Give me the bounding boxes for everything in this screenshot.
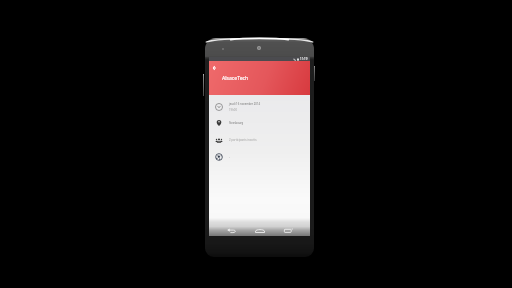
staticText: 19h00 [229,108,237,112]
staticText: 11:19 [300,57,308,61]
button[interactable]: Back [210,64,218,72]
staticText: Strasbourg [229,121,244,125]
staticText: jeudi 16 novembre 2014 [229,102,261,106]
button[interactable]: Strasbourg [209,115,310,131]
button[interactable]: Home [255,225,265,235]
button[interactable]: - [209,148,310,165]
button[interactable]: Back [226,225,236,235]
button[interactable]: jeudi 16 novembre 2014 [209,98,310,115]
staticText: 2 participants inscrits [229,138,257,142]
staticText: - [229,155,230,159]
button[interactable]: 2 participants inscrits [209,131,310,148]
button[interactable]: Back [209,61,310,95]
staticText: AlsaceTech [222,75,249,82]
button[interactable]: Recents [283,225,293,235]
